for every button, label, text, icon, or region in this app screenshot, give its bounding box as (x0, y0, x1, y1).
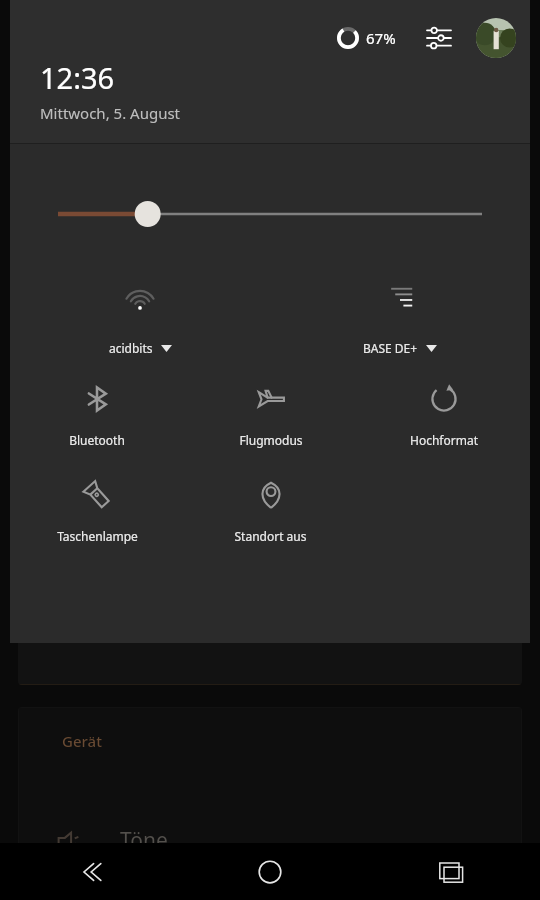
button[interactable]: User profile (476, 18, 516, 58)
staticText: BASE DE+ (363, 340, 418, 356)
button[interactable]: Wi-Fi (10, 276, 270, 360)
button[interactable]: Settings (422, 21, 456, 55)
staticText: Taschenlampe (57, 528, 138, 544)
staticText: Gerät (62, 731, 102, 751)
button[interactable]: Gerät (18, 707, 522, 867)
button[interactable]: Flugmodus (184, 378, 357, 452)
staticText: Flugmodus (239, 432, 303, 448)
staticText: Bluetooth (69, 432, 125, 448)
button[interactable]: Taschenlampe (10, 474, 184, 548)
button[interactable]: Brightness (10, 194, 530, 234)
button[interactable]: Back (0, 843, 180, 900)
button[interactable]: Home (180, 843, 360, 900)
button[interactable]: Battery 67 percent (335, 23, 398, 53)
button[interactable]: Bluetooth (10, 378, 184, 452)
staticText: Mittwoch, 5. August (40, 103, 181, 123)
button[interactable]: Hochformat (357, 378, 530, 452)
staticText: acidbits (109, 340, 153, 356)
staticText: Standort aus (234, 528, 307, 544)
staticText: 67% (366, 28, 396, 48)
button[interactable]: Recent apps (360, 843, 540, 900)
staticText: Töne (120, 826, 168, 855)
button[interactable]: Mobile data (270, 276, 530, 360)
button[interactable]: Standort aus (184, 474, 357, 548)
staticText: 12:36 (40, 58, 115, 97)
staticText: Hochformat (410, 432, 478, 448)
